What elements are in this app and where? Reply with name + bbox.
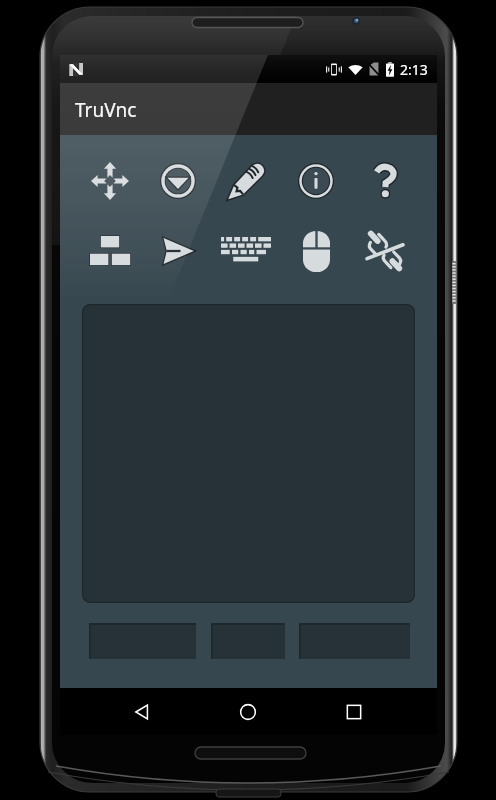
button[interactable]: Back [118, 688, 166, 735]
staticText: TruVnc [75, 97, 137, 123]
button[interactable]: Help [356, 152, 414, 210]
button[interactable]: Info [287, 152, 345, 210]
button[interactable]: Send [149, 222, 207, 280]
button[interactable]: Pan [81, 152, 139, 210]
button[interactable]: Draw [217, 152, 275, 210]
button[interactable]: Servers [81, 222, 139, 280]
staticText: 2:13 [400, 60, 428, 79]
button[interactable]: Recent apps [330, 688, 378, 735]
button[interactable]: Home [224, 688, 272, 735]
button[interactable]: Disconnect [356, 222, 414, 280]
button[interactable]: Scroll down [149, 152, 207, 210]
button[interactable]: Mouse [287, 222, 345, 280]
button[interactable]: Keyboard [217, 222, 275, 280]
